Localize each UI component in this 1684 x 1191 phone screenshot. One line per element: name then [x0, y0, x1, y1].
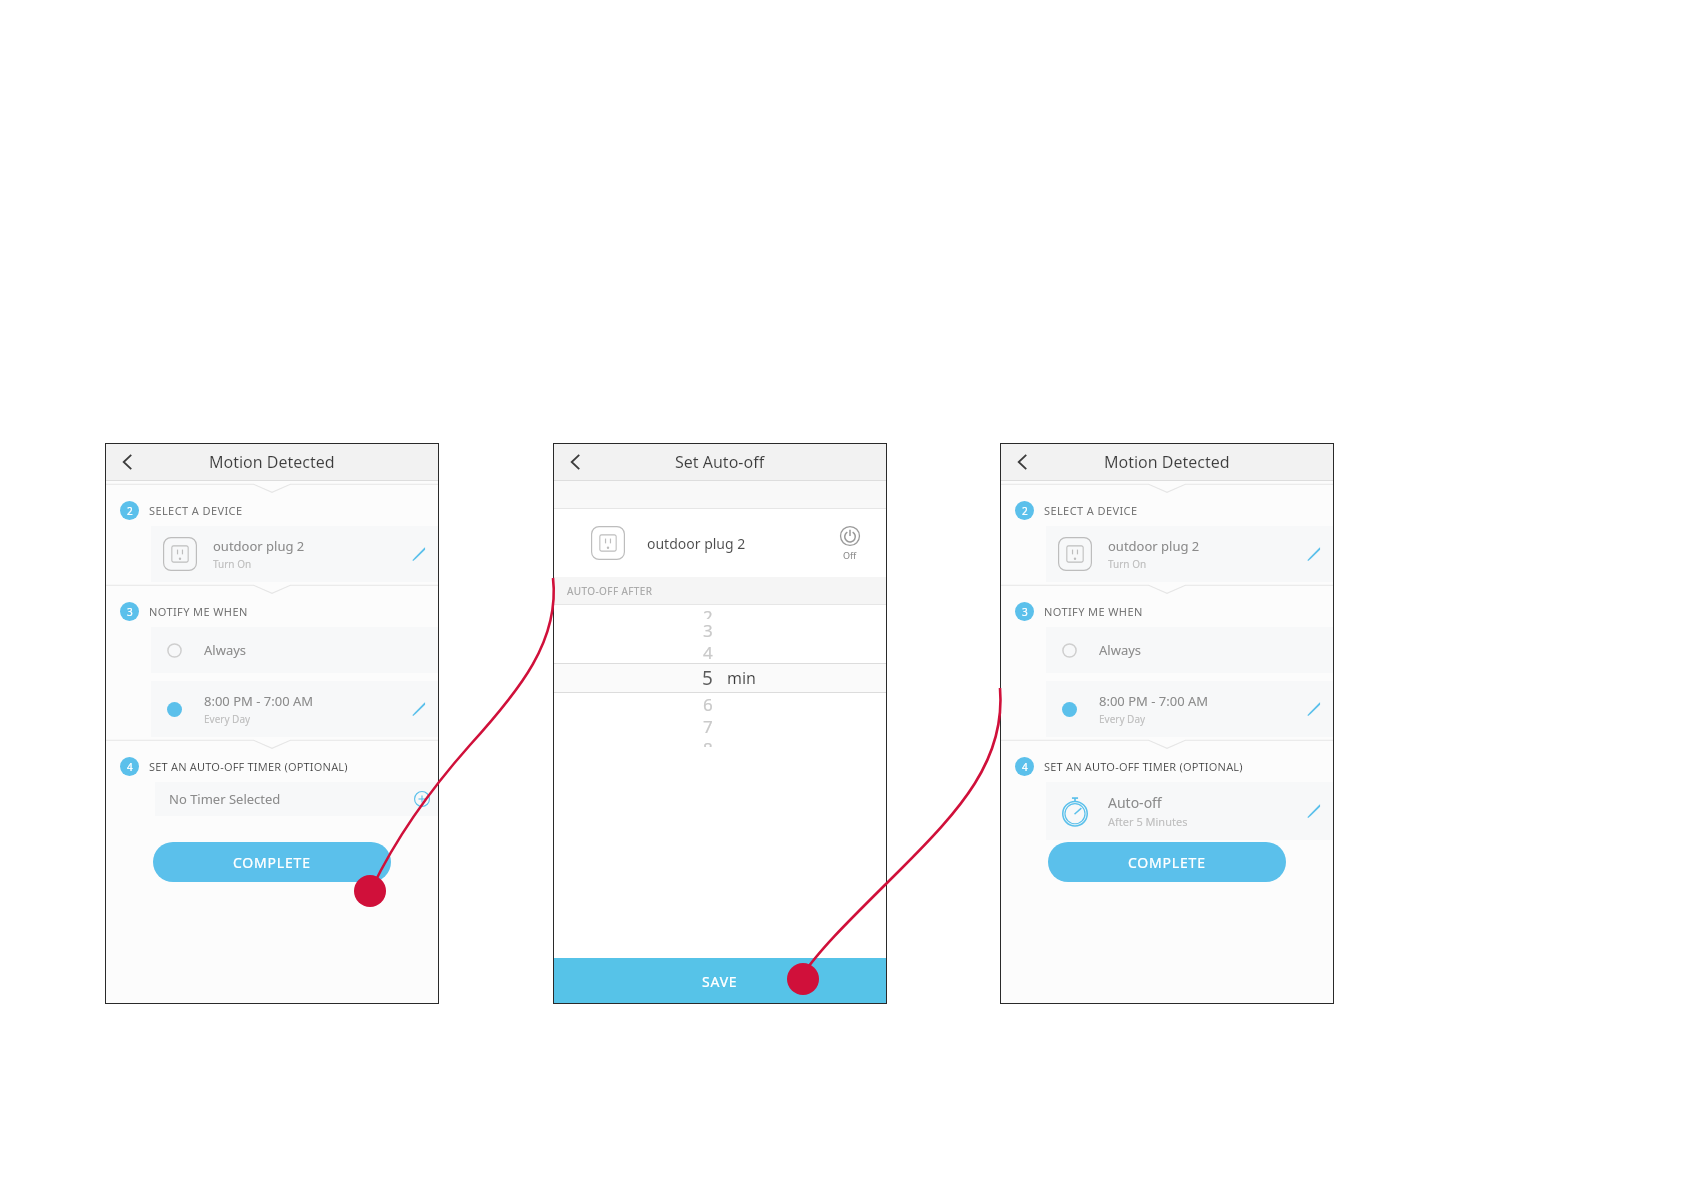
staticText: min: [727, 667, 756, 689]
staticText: 4: [703, 641, 713, 663]
staticText: 6: [703, 693, 713, 715]
staticText: 2: [1022, 504, 1028, 518]
staticText: After 5 Minutes: [1108, 814, 1188, 829]
staticText: AUTO-OFF AFTER: [567, 584, 653, 598]
button[interactable]: Back: [111, 445, 145, 479]
staticText: No Timer Selected: [169, 790, 409, 808]
staticText: 2: [703, 605, 713, 619]
button[interactable]: COMPLETE: [153, 842, 391, 882]
button[interactable]: 5: [553, 664, 887, 692]
staticText: 4: [1022, 760, 1028, 774]
button[interactable]: 8:00 PM - 7:00 AM: [1046, 681, 1334, 737]
staticText: Off: [843, 549, 857, 561]
button[interactable]: Add timer: [409, 786, 435, 812]
staticText: 4: [127, 760, 133, 774]
button[interactable]: Edit: [404, 540, 433, 569]
staticText: NOTIFY ME WHEN: [1044, 604, 1143, 619]
button[interactable]: Power off: [835, 525, 865, 561]
button[interactable]: 6: [553, 693, 887, 715]
staticText: Always: [204, 641, 247, 659]
button[interactable]: SAVE: [553, 958, 887, 1004]
button[interactable]: 4: [553, 641, 887, 663]
staticText: COMPLETE: [1128, 853, 1206, 872]
staticText: outdoor plug 2: [647, 534, 835, 553]
button[interactable]: Auto-off: [1046, 782, 1334, 840]
button[interactable]: Edit: [404, 695, 433, 724]
staticText: 3: [127, 605, 133, 619]
staticText: Turn On: [213, 557, 252, 571]
staticText: Set Auto-off: [675, 451, 765, 473]
staticText: 8: [703, 737, 713, 747]
staticText: Every Day: [1099, 712, 1146, 726]
staticText: Every Day: [204, 712, 251, 726]
staticText: Motion Detected: [209, 451, 335, 473]
button[interactable]: 3: [553, 619, 887, 641]
button[interactable]: Always: [1046, 627, 1334, 673]
staticText: outdoor plug 2: [213, 537, 305, 555]
staticText: 8:00 PM - 7:00 AM: [1099, 692, 1209, 710]
button[interactable]: Edit: [1299, 797, 1328, 826]
staticText: 5: [702, 665, 713, 691]
button[interactable]: 8:00 PM - 7:00 AM: [151, 681, 439, 737]
staticText: SAVE: [702, 972, 738, 991]
button[interactable]: No Timer Selected: [155, 782, 439, 816]
staticText: COMPLETE: [233, 853, 311, 872]
button[interactable]: 2: [553, 605, 887, 619]
button[interactable]: Back: [1006, 445, 1040, 479]
staticText: Motion Detected: [1104, 451, 1230, 473]
button[interactable]: outdoor plug 2: [151, 526, 439, 582]
button[interactable]: 8: [553, 737, 887, 747]
button[interactable]: Back: [559, 445, 593, 479]
staticText: Turn On: [1108, 557, 1147, 571]
staticText: Always: [1099, 641, 1142, 659]
button[interactable]: 7: [553, 715, 887, 737]
staticText: SELECT A DEVICE: [149, 503, 243, 518]
staticText: 3: [703, 619, 713, 641]
button[interactable]: Edit: [1299, 540, 1328, 569]
staticText: 7: [703, 715, 713, 737]
staticText: SELECT A DEVICE: [1044, 503, 1138, 518]
staticText: 2: [127, 504, 133, 518]
button[interactable]: Always: [151, 627, 439, 673]
staticText: SET AN AUTO-OFF TIMER (OPTIONAL): [1044, 759, 1243, 774]
button[interactable]: Edit: [1299, 695, 1328, 724]
staticText: Auto-off: [1108, 793, 1162, 812]
button[interactable]: COMPLETE: [1048, 842, 1286, 882]
staticText: outdoor plug 2: [1108, 537, 1200, 555]
staticText: NOTIFY ME WHEN: [149, 604, 248, 619]
staticText: SET AN AUTO-OFF TIMER (OPTIONAL): [149, 759, 348, 774]
staticText: 8:00 PM - 7:00 AM: [204, 692, 314, 710]
button[interactable]: outdoor plug 2: [1046, 526, 1334, 582]
staticText: 3: [1022, 605, 1028, 619]
